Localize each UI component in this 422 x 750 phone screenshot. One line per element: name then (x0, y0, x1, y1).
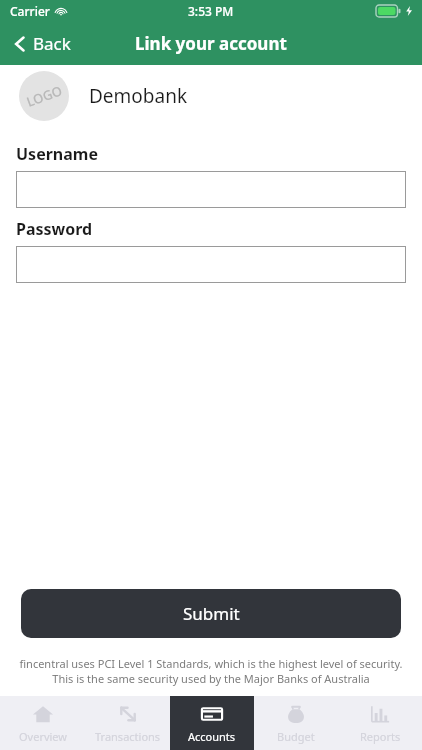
staticText: LOGO (24, 81, 65, 111)
button[interactable]: Submit (21, 589, 401, 638)
staticText: Link your account (135, 32, 287, 55)
staticText: 3:53 PM (188, 3, 234, 19)
button[interactable]: Budget (254, 696, 338, 750)
staticText: Overview (19, 729, 67, 744)
staticText: Back (33, 32, 71, 55)
button[interactable]: Reports (338, 696, 422, 750)
staticText: Password (16, 218, 93, 240)
staticText: Carrier (10, 3, 50, 19)
button[interactable]: Accounts (170, 696, 254, 750)
button[interactable]: Overview (0, 696, 85, 750)
staticText: Transactions (95, 729, 161, 744)
staticText: This is the same security used by the Ma… (14, 671, 408, 686)
staticText: Budget (277, 729, 315, 744)
staticText: Demobank (89, 83, 188, 109)
staticText: Accounts (188, 729, 236, 744)
staticText: Submit (183, 602, 240, 625)
button[interactable] (16, 171, 406, 208)
button[interactable]: Back (0, 26, 83, 61)
button[interactable]: Transactions (85, 696, 170, 750)
staticText: fincentral uses PCI Level 1 Standards, w… (14, 656, 408, 671)
staticText: Reports (360, 729, 401, 744)
staticText: Username (16, 143, 98, 165)
button[interactable] (16, 246, 406, 283)
